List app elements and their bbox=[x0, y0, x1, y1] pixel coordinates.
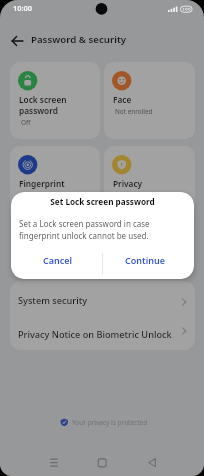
staticText: fingerprint unlock cannot be used. bbox=[19, 230, 149, 241]
button[interactable]: Privacy bbox=[104, 146, 195, 224]
button[interactable]: Fingerprint bbox=[10, 146, 100, 224]
staticText: Privacy bbox=[113, 178, 143, 189]
staticText: 10:00 bbox=[13, 3, 32, 13]
button[interactable] bbox=[46, 455, 62, 471]
button[interactable]: Face bbox=[104, 62, 195, 139]
staticText: Your privacy is protected bbox=[72, 418, 148, 427]
staticText: Cancel bbox=[43, 254, 73, 266]
staticText: Not enrolled bbox=[115, 107, 153, 116]
button[interactable] bbox=[144, 455, 160, 471]
staticText: Password & security bbox=[31, 33, 127, 46]
button[interactable]: Cancel bbox=[18, 249, 98, 271]
button[interactable] bbox=[10, 281, 195, 316]
staticText: Set a Lock screen password in case bbox=[19, 218, 150, 229]
button[interactable]: Continue bbox=[105, 249, 185, 271]
staticText: Lock screen password bbox=[19, 94, 67, 117]
staticText: System security bbox=[18, 294, 87, 307]
staticText: Off bbox=[21, 118, 31, 127]
staticText: Continue bbox=[125, 254, 165, 266]
button[interactable] bbox=[94, 455, 110, 471]
staticText: Set Lock screen password bbox=[11, 196, 194, 207]
staticText: Face bbox=[113, 94, 132, 105]
button[interactable]: Lock screen password bbox=[10, 62, 100, 139]
staticText: Fingerprint bbox=[19, 178, 65, 189]
button[interactable] bbox=[9, 33, 27, 51]
button[interactable] bbox=[10, 316, 195, 350]
staticText: Privacy Notice on Biometric Unlock bbox=[18, 328, 172, 341]
